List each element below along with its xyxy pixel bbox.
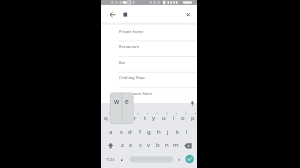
staticText: t xyxy=(144,114,147,122)
staticText: i xyxy=(173,114,175,122)
staticText: q xyxy=(104,114,108,122)
staticText: Restaurant xyxy=(119,44,139,49)
staticText: s xyxy=(120,128,123,136)
staticText: ?123 xyxy=(106,157,115,162)
staticText: Bar xyxy=(119,60,126,65)
staticText: f xyxy=(139,128,142,136)
staticText: k xyxy=(176,128,180,136)
staticText: o xyxy=(181,114,185,122)
staticText: r xyxy=(134,114,137,122)
staticText: z xyxy=(121,141,124,149)
staticText: d xyxy=(128,128,132,136)
staticText: b xyxy=(156,141,160,149)
staticText: y xyxy=(152,114,156,122)
staticText: h xyxy=(157,128,161,136)
staticText: Private home xyxy=(119,29,144,34)
staticText: w xyxy=(114,97,120,106)
staticText: n xyxy=(165,141,169,149)
staticText: a xyxy=(109,128,113,136)
staticText: Clothing Shop xyxy=(119,75,145,80)
staticText: v xyxy=(147,141,151,149)
staticText: m xyxy=(173,141,179,149)
staticText: j xyxy=(167,128,169,136)
staticText: x xyxy=(129,141,133,149)
staticText: Housewares Store xyxy=(119,91,153,96)
staticText: u xyxy=(162,114,166,122)
staticText: g xyxy=(147,128,151,136)
staticText: e xyxy=(125,97,129,106)
staticText: l xyxy=(186,128,188,136)
staticText: c xyxy=(139,141,142,149)
staticText: p xyxy=(191,114,195,122)
